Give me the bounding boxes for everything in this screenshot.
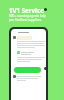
staticText: 1V1 Service <box>9 6 44 14</box>
button[interactable]: More options <box>44 67 46 70</box>
button[interactable]: 1V1 Service <box>9 6 44 14</box>
staticText: 500+ sourcing agents help you find best … <box>9 14 47 22</box>
button[interactable]: Start chat <box>14 67 41 73</box>
button[interactable]: Info <box>44 8 47 11</box>
